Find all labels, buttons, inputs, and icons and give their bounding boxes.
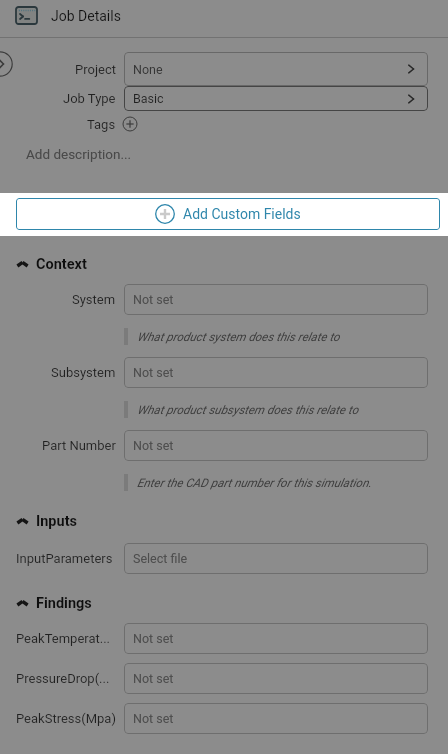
staticText: What product system does this relate to <box>137 330 340 344</box>
button[interactable]: Not set <box>124 703 428 734</box>
staticText: PressureDrop(... <box>16 671 110 686</box>
button[interactable]: Findings <box>15 595 92 612</box>
button[interactable]: Basic <box>124 86 428 111</box>
button[interactable]: Next <box>0 51 13 77</box>
button[interactable]: Inputs <box>15 513 78 530</box>
staticText: Not set <box>133 438 174 453</box>
button[interactable]: Select file <box>124 543 428 574</box>
staticText: InputParameters <box>16 551 113 566</box>
button[interactable]: Job console <box>15 6 121 25</box>
staticText: Not set <box>133 631 174 646</box>
staticText: Project <box>75 62 116 77</box>
button[interactable]: Add tag <box>122 116 138 132</box>
button[interactable]: Not set <box>124 623 428 654</box>
staticText: Not set <box>133 292 174 307</box>
staticText: Enter the CAD part number for this simul… <box>137 476 372 490</box>
staticText: Add Custom Fields <box>183 206 301 222</box>
staticText: What product subsystem does this relate … <box>137 403 359 417</box>
staticText: Tags <box>87 117 116 132</box>
staticText: Job Details <box>51 8 121 24</box>
staticText: Context <box>36 256 87 273</box>
staticText: System <box>72 292 116 307</box>
button[interactable]: Not set <box>124 284 428 315</box>
staticText: PeakStress(Mpa) <box>16 711 116 726</box>
staticText: Findings <box>36 595 92 612</box>
other: Job console <box>15 6 38 25</box>
button[interactable]: Not set <box>124 430 428 461</box>
button[interactable]: None <box>124 52 428 86</box>
button[interactable]: Add Custom Fields <box>16 198 440 230</box>
staticText: Job Type <box>63 91 116 106</box>
staticText: Subsystem <box>51 365 116 380</box>
staticText: Add description... <box>26 146 132 162</box>
staticText: Not set <box>133 671 174 686</box>
staticText: Not set <box>133 365 174 380</box>
staticText: None <box>133 62 163 77</box>
staticText: Not set <box>133 711 174 726</box>
staticText: Basic <box>133 91 164 106</box>
staticText: Inputs <box>36 513 78 530</box>
staticText: Select file <box>133 551 188 566</box>
button[interactable]: Context <box>15 256 87 273</box>
button[interactable]: Not set <box>124 357 428 388</box>
button[interactable]: Not set <box>124 663 428 694</box>
staticText: Part Number <box>42 438 116 453</box>
staticText: PeakTemperat... <box>16 631 111 646</box>
